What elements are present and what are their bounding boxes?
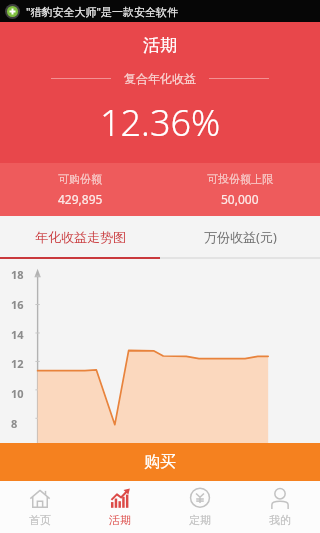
staticText: 10 — [11, 386, 24, 401]
staticText: 可购份额 — [58, 172, 102, 186]
button[interactable]: 万份收益(元) — [160, 216, 320, 257]
button[interactable]: 购买 — [0, 443, 320, 481]
staticText: 12.36% — [100, 98, 221, 147]
staticText: 首页 — [29, 513, 51, 527]
staticText: 定期 — [189, 513, 211, 527]
staticText: 18 — [11, 267, 24, 282]
button[interactable]: 定期 — [160, 481, 240, 533]
staticText: 我的 — [269, 513, 291, 527]
staticText: 年化收益走势图 — [35, 229, 126, 245]
staticText: 16 — [11, 297, 24, 312]
staticText: 购买 — [144, 452, 176, 472]
staticText: 活期 — [143, 35, 177, 56]
staticText: 12 — [11, 356, 24, 371]
staticText: 万份收益(元) — [204, 228, 277, 246]
staticText: 复合年化收益 — [124, 71, 196, 86]
staticText: 429,895 — [58, 191, 103, 207]
staticText: 14 — [11, 327, 24, 342]
button[interactable]: 活期 — [80, 481, 160, 533]
button[interactable]: 我的 — [240, 481, 320, 533]
staticText: "猎豹安全大师"是一款安全软件 — [26, 4, 178, 19]
staticText: 8 — [11, 416, 18, 431]
button[interactable]: 年化收益走势图 — [0, 216, 160, 257]
button[interactable]: 首页 — [0, 481, 80, 533]
staticText: 活期 — [109, 513, 131, 527]
staticText: 可投份额上限 — [207, 172, 273, 186]
staticText: 50,000 — [221, 191, 259, 207]
